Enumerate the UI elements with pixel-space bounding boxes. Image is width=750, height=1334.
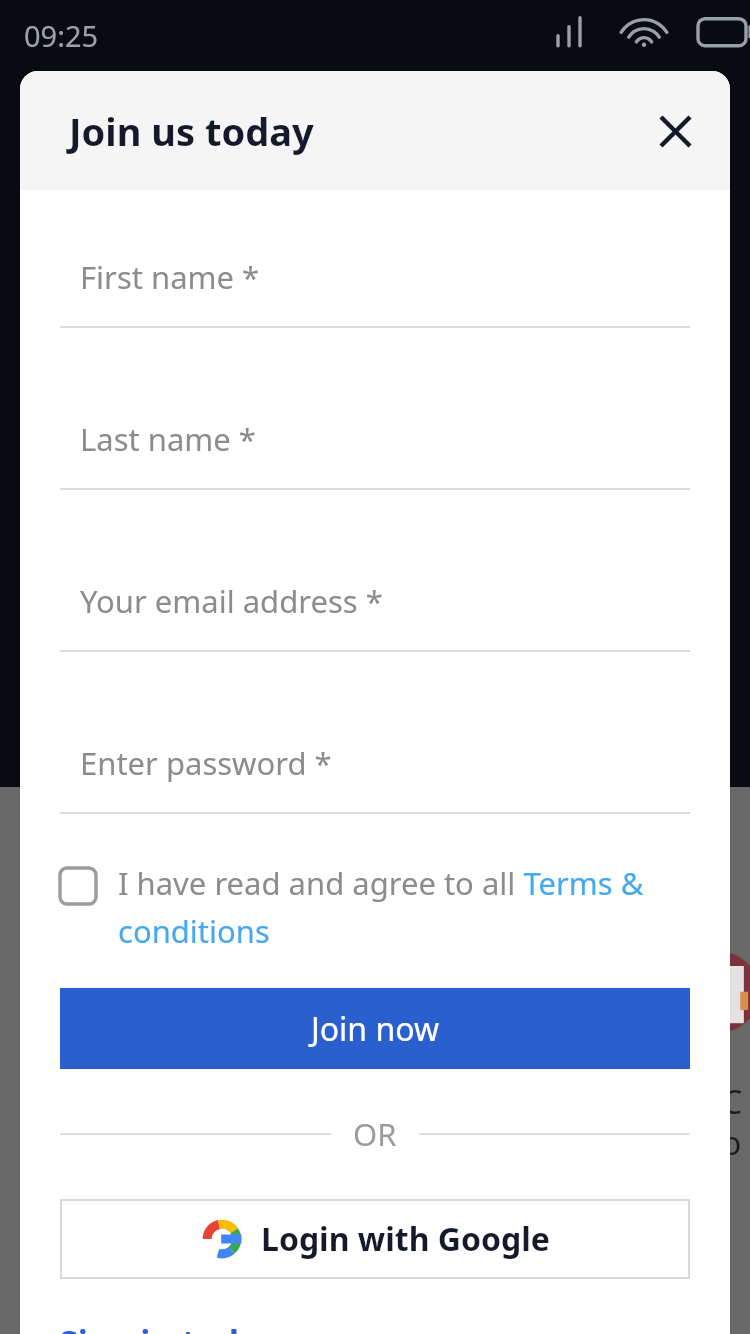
button[interactable]: First name * bbox=[60, 256, 690, 328]
button[interactable]: Close bbox=[646, 102, 704, 160]
button[interactable]: Sign in today bbox=[59, 1319, 279, 1334]
button[interactable]: Your email address * bbox=[60, 580, 690, 652]
staticText: First name * bbox=[80, 256, 260, 298]
staticText: Co bbox=[722, 1080, 750, 1165]
staticText: Join now bbox=[311, 1007, 440, 1051]
staticText: 09:25 bbox=[24, 16, 99, 55]
button[interactable]: Login with Google bbox=[60, 1199, 690, 1279]
button[interactable]: Enter password * bbox=[60, 742, 690, 814]
staticText: Join us today bbox=[69, 105, 314, 157]
staticText: Last name * bbox=[80, 418, 256, 460]
staticText: Enter password * bbox=[80, 742, 332, 784]
button[interactable]: Last name * bbox=[60, 418, 690, 490]
staticText: Your email address * bbox=[80, 580, 383, 622]
button[interactable]: I have read and agree to all Terms & con… bbox=[60, 862, 700, 952]
button[interactable]: Join now bbox=[60, 988, 690, 1069]
staticText: Login with Google bbox=[261, 1217, 550, 1261]
staticText: I have read and agree to all Terms & con… bbox=[118, 862, 700, 952]
staticText: OR bbox=[353, 1113, 397, 1155]
